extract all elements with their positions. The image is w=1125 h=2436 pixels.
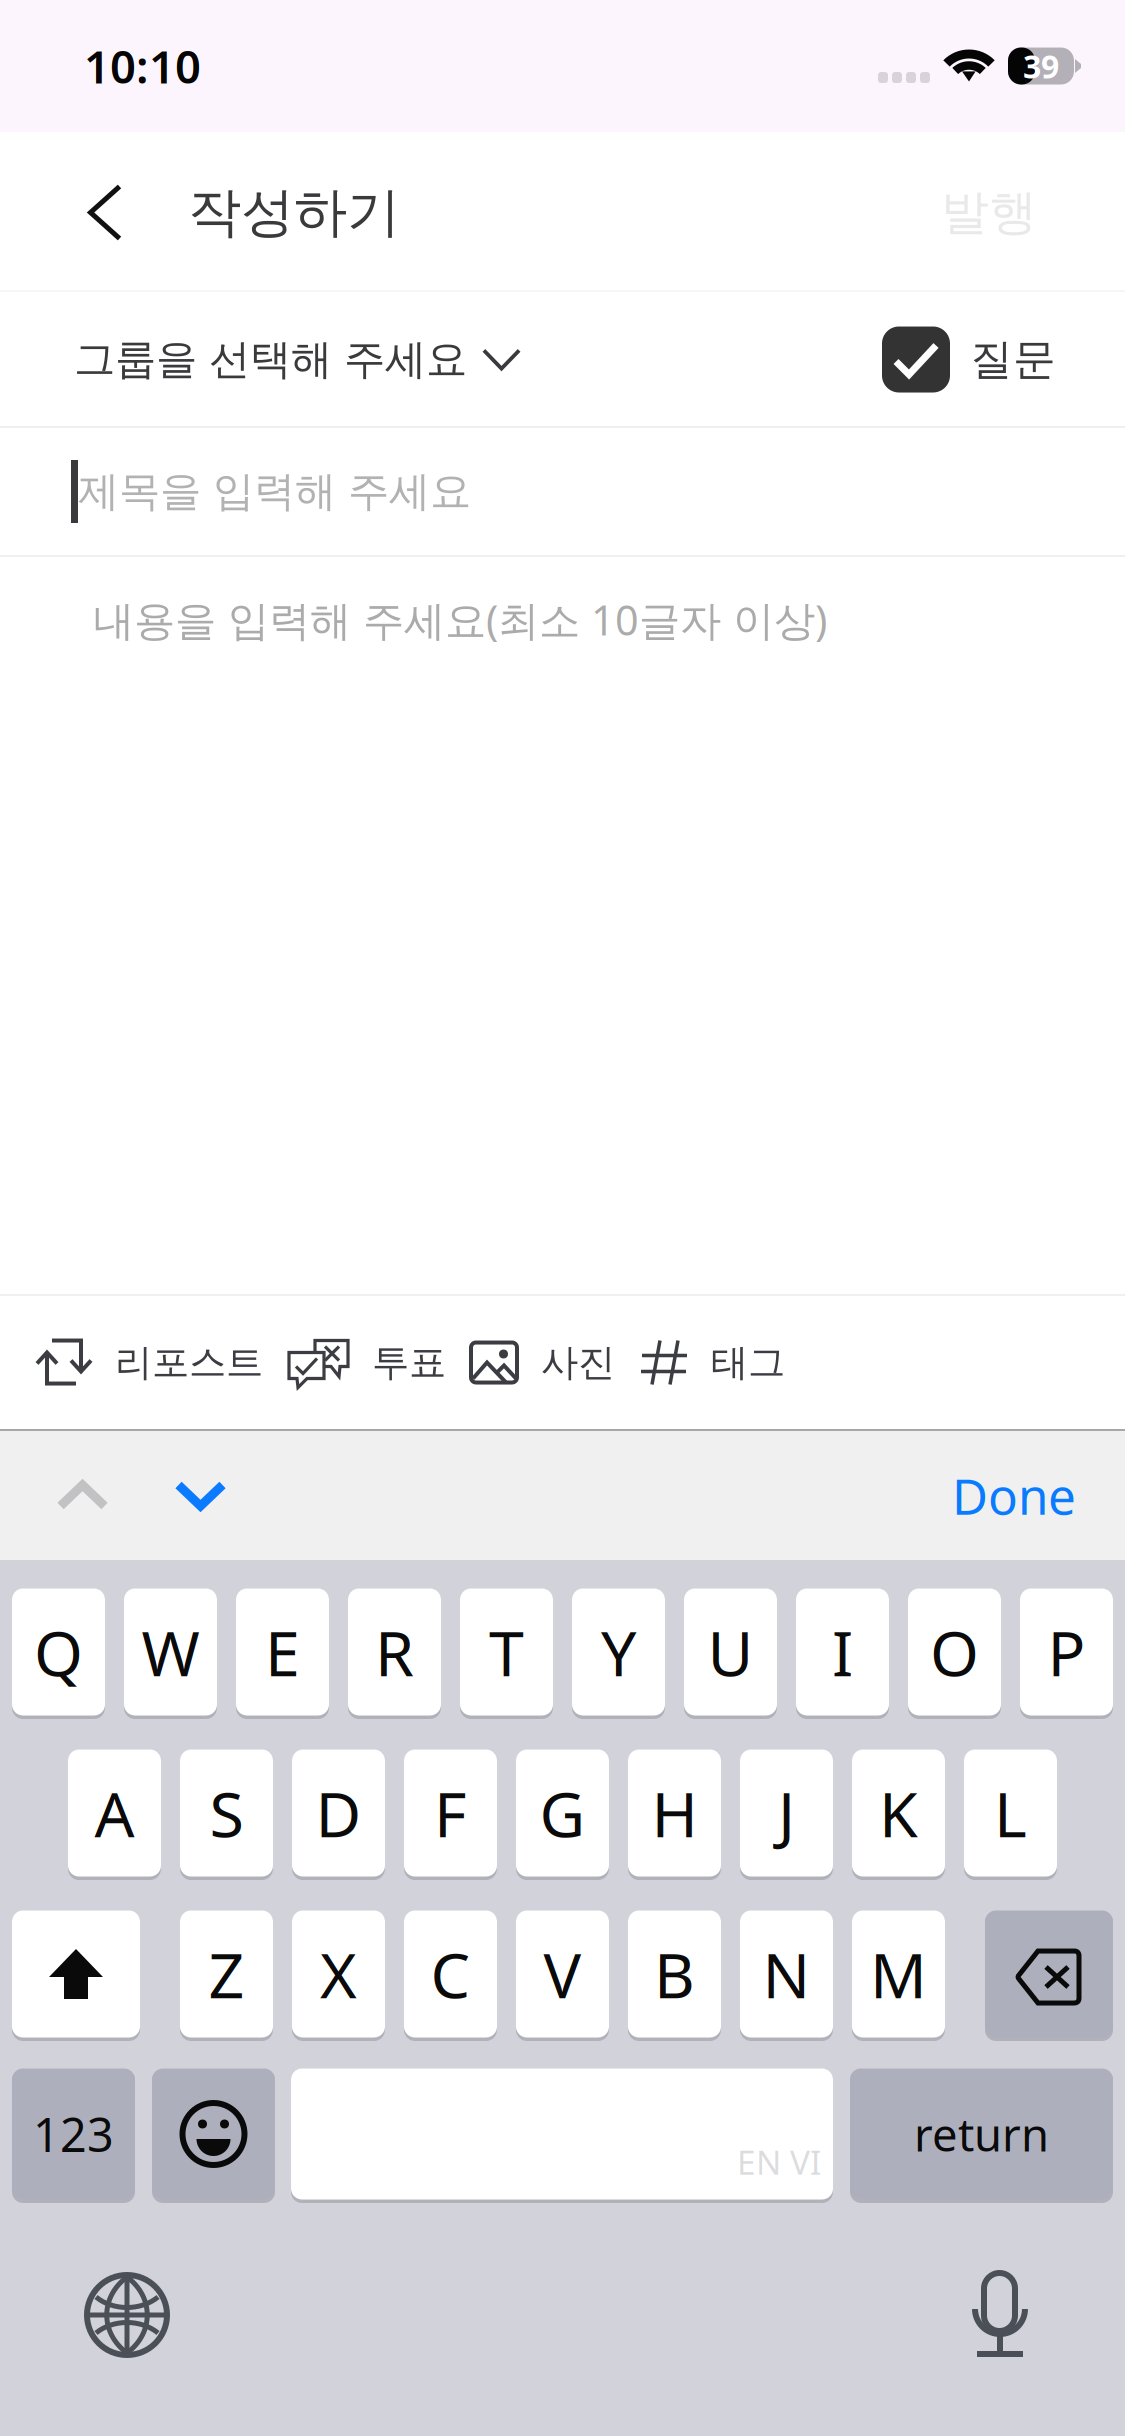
staticText: V [543,1932,581,2016]
button[interactable]: P [1020,1586,1113,1718]
button[interactable]: J [740,1747,833,1879]
button[interactable]: F [404,1747,497,1879]
button[interactable]: 태그 [640,1296,810,1429]
button[interactable]: G [516,1747,609,1879]
button[interactable]: S [180,1747,273,1879]
staticText: M [870,1932,927,2016]
staticText: O [930,1610,979,1694]
button[interactable]: B [628,1908,721,2040]
staticText: 123 [33,2103,114,2165]
staticText: H [651,1771,697,1855]
staticText: Y [601,1610,636,1694]
staticText: T [489,1610,524,1694]
staticText: EN VI [737,2140,821,2184]
button[interactable]: N [740,1908,833,2040]
staticText: 리포스트 [115,1340,263,1385]
staticText: C [430,1932,470,2016]
button[interactable]: T [460,1586,553,1718]
staticText: L [994,1771,1027,1855]
button[interactable]: Done [952,1431,1125,1560]
button[interactable]: Back [0,133,188,292]
staticText: X [320,1932,357,2016]
staticText: Z [208,1932,244,2016]
staticText: 10:10 [84,36,201,96]
button[interactable]: Next field [174,1431,287,1560]
button[interactable]: I [796,1586,889,1718]
button[interactable]: L [964,1747,1057,1879]
staticText: 투표 [372,1340,446,1385]
staticText: W [141,1610,199,1694]
button[interactable]: 그룹을 선택해 주세요 [0,293,521,426]
button[interactable]: R [348,1586,441,1718]
staticText: Done [952,1463,1076,1528]
staticText: E [265,1610,300,1694]
button[interactable]: U [684,1586,777,1718]
staticText: R [375,1610,414,1694]
button[interactable]: Previous field [0,1431,174,1560]
button[interactable]: M [852,1908,945,2040]
staticText: I [832,1610,853,1694]
button[interactable]: 123 [12,2066,135,2202]
button[interactable]: 사진 [471,1296,640,1429]
staticText: 태그 [711,1340,785,1385]
staticText: J [778,1771,795,1855]
staticText: 내용을 입력해 주세요(최소 10글자 이상) [93,592,827,647]
staticText: K [879,1771,918,1855]
button[interactable]: Space [291,2066,833,2202]
staticText: 사진 [541,1340,615,1385]
staticText: 제목을 입력해 주세요 [78,466,471,517]
button[interactable]: 리포스트 [36,1296,288,1429]
button[interactable]: E [236,1586,329,1718]
button[interactable]: 질문 [882,293,1125,426]
staticText: 그룹을 선택해 주세요 [74,334,467,385]
button[interactable]: A [68,1747,161,1879]
button[interactable]: Delete [985,1908,1113,2040]
button[interactable]: Shift [12,1908,140,2040]
button[interactable]: 투표 [288,1296,471,1429]
staticText: N [762,1932,810,2016]
button[interactable]: X [292,1908,385,2040]
button[interactable]: W [124,1586,217,1718]
button[interactable]: 발행 [941,133,1125,292]
staticText: F [434,1771,467,1855]
staticText: A [94,1771,134,1855]
staticText: 작성하기 [188,180,400,245]
button[interactable]: Q [12,1586,105,1718]
staticText: 39 [1023,45,1059,87]
staticText: D [315,1771,361,1855]
staticText: S [209,1771,243,1855]
staticText: B [654,1932,695,2016]
staticText: return [914,2104,1049,2164]
button[interactable]: Next keyboard [0,2257,197,2373]
button[interactable]: Emoji [152,2066,275,2202]
staticText: 질문 [970,333,1056,386]
button[interactable]: Y [572,1586,665,1718]
button[interactable]: Z [180,1908,273,2040]
button[interactable]: Dictation [942,2255,1125,2375]
button[interactable]: C [404,1908,497,2040]
button[interactable]: return [850,2066,1113,2202]
button[interactable]: V [516,1908,609,2040]
staticText: P [1047,1610,1085,1694]
staticText: U [707,1610,753,1694]
button[interactable]: H [628,1747,721,1879]
button[interactable]: D [292,1747,385,1879]
staticText: Q [34,1610,83,1694]
button[interactable]: K [852,1747,945,1879]
staticText: 발행 [941,183,1037,242]
staticText: G [539,1771,585,1855]
button[interactable]: O [908,1586,1001,1718]
